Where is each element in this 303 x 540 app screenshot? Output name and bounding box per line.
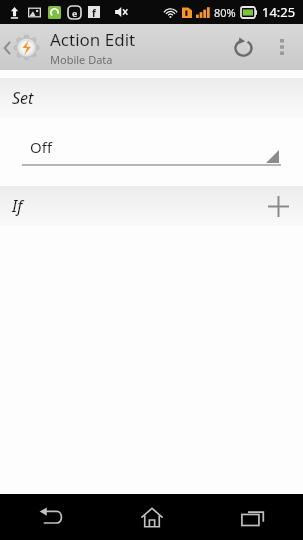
button[interactable]: Home — [101, 494, 202, 540]
button[interactable]: Off — [22, 132, 281, 166]
staticText: If — [12, 195, 23, 217]
button[interactable]: Navigate up — [0, 29, 41, 66]
staticText: f — [92, 6, 96, 18]
button[interactable]: More options — [265, 30, 299, 64]
button[interactable]: Back — [0, 494, 101, 540]
staticText: e — [72, 7, 78, 19]
button[interactable]: Recent apps — [202, 494, 303, 540]
staticText: Off — [30, 137, 53, 157]
staticText: Mobile Data — [50, 52, 113, 67]
staticText: Action Edit — [50, 28, 136, 51]
staticText: 80% — [214, 5, 236, 20]
staticText: 14:25 — [262, 3, 296, 21]
button[interactable]: Add condition — [261, 189, 295, 223]
button[interactable]: Reset — [221, 25, 265, 69]
staticText: Set — [12, 87, 34, 109]
